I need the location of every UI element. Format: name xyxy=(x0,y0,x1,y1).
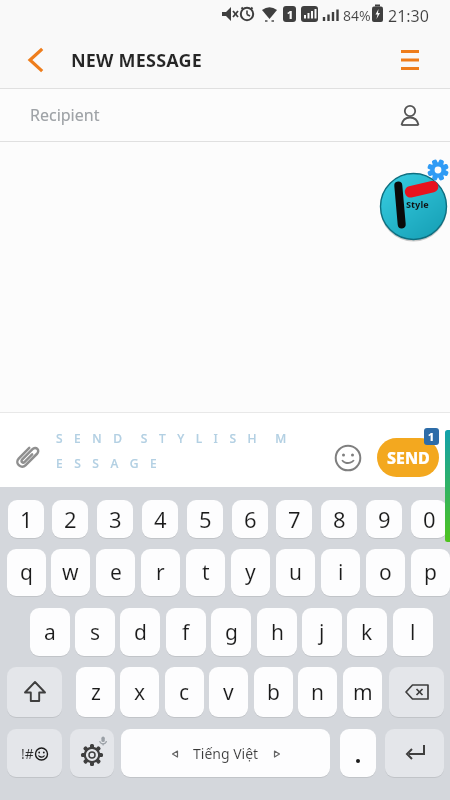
staticText: l xyxy=(410,618,416,647)
button[interactable] xyxy=(333,443,363,473)
button[interactable]: e xyxy=(96,549,135,596)
staticText: 1 xyxy=(428,429,435,444)
button[interactable]: x xyxy=(120,667,159,717)
button[interactable]: a xyxy=(30,608,70,656)
staticText: o xyxy=(379,558,392,587)
button[interactable]: 3 xyxy=(97,500,133,538)
button[interactable] xyxy=(18,44,52,76)
button[interactable]: 1 xyxy=(8,500,44,538)
staticText: S E N D S T Y L I S H M xyxy=(56,430,291,446)
staticText: a xyxy=(44,618,56,647)
button[interactable] xyxy=(9,439,45,475)
staticText: s xyxy=(90,618,101,647)
staticText: y xyxy=(245,558,256,587)
button[interactable] xyxy=(394,44,428,76)
staticText: SEND xyxy=(387,447,430,469)
staticText: 84% xyxy=(343,6,371,25)
button[interactable]: 7 xyxy=(276,500,312,538)
button[interactable]: m xyxy=(343,667,382,717)
button[interactable]: k xyxy=(347,608,387,656)
button[interactable]: w xyxy=(51,549,90,596)
staticText: k xyxy=(361,618,373,647)
staticText: Tiếng Việt xyxy=(193,744,259,763)
button[interactable] xyxy=(396,102,424,130)
staticText: w xyxy=(62,558,79,587)
staticText: 1 xyxy=(287,7,294,22)
button[interactable]: Style xyxy=(380,173,447,240)
staticText: q xyxy=(20,558,33,587)
staticText: 0 xyxy=(423,504,436,534)
staticText: c xyxy=(179,678,190,707)
button[interactable] xyxy=(70,729,114,777)
staticText: 2 xyxy=(64,504,77,534)
button[interactable]: 2 xyxy=(52,500,88,538)
button[interactable]: z xyxy=(76,667,115,717)
staticText: n xyxy=(311,678,324,707)
staticText: 9 xyxy=(378,504,391,534)
staticText: 4 xyxy=(154,504,167,534)
staticText: NEW MESSAGE xyxy=(71,48,203,73)
button[interactable]: 4 xyxy=(142,500,178,538)
button[interactable]: f xyxy=(166,608,206,656)
button[interactable]: u xyxy=(276,549,315,596)
staticText: v xyxy=(223,678,234,707)
staticText: h xyxy=(271,618,284,647)
button[interactable]: !# xyxy=(7,729,62,777)
button[interactable] xyxy=(0,89,450,141)
staticText: m xyxy=(353,678,373,707)
staticText: d xyxy=(134,618,147,647)
button[interactable]: y xyxy=(231,549,270,596)
staticText: 3 xyxy=(109,504,122,534)
button[interactable]: 6 xyxy=(232,500,268,538)
button[interactable]: q xyxy=(7,549,46,596)
button[interactable]: v xyxy=(209,667,248,717)
staticText: u xyxy=(289,558,302,587)
button[interactable] xyxy=(7,667,62,717)
staticText: 1 xyxy=(20,504,33,534)
staticText: Recipient xyxy=(30,104,100,126)
staticText: 7 xyxy=(288,504,301,534)
button[interactable] xyxy=(389,667,444,717)
button[interactable] xyxy=(385,729,444,777)
staticText: E S S A G E xyxy=(56,455,161,471)
button[interactable]: i xyxy=(321,549,360,596)
button[interactable]: r xyxy=(141,549,180,596)
button[interactable]: c xyxy=(165,667,204,717)
staticText: Style xyxy=(406,198,429,210)
staticText: f xyxy=(182,618,190,647)
staticText: g xyxy=(225,618,238,647)
button[interactable]: Tiếng Việt xyxy=(121,729,330,777)
button[interactable]: SEND xyxy=(377,438,439,477)
staticText: 5 xyxy=(199,504,212,534)
staticText: r xyxy=(156,558,165,587)
staticText: 8 xyxy=(333,504,346,534)
button[interactable]: 8 xyxy=(321,500,357,538)
button[interactable]: t xyxy=(186,549,225,596)
button[interactable]: g xyxy=(211,608,251,656)
staticText: 21:30 xyxy=(388,5,429,27)
button[interactable] xyxy=(340,729,376,777)
staticText: !# xyxy=(21,744,34,763)
staticText: x xyxy=(134,678,146,707)
staticText: t xyxy=(202,558,210,587)
button[interactable]: j xyxy=(302,608,342,656)
button[interactable]: n xyxy=(298,667,337,717)
button[interactable]: 5 xyxy=(187,500,223,538)
button[interactable]: o xyxy=(366,549,405,596)
button[interactable]: 9 xyxy=(366,500,402,538)
staticText: p xyxy=(424,558,437,587)
staticText: 6 xyxy=(244,504,257,534)
button[interactable]: s xyxy=(75,608,115,656)
button[interactable]: b xyxy=(254,667,293,717)
staticText: z xyxy=(91,678,101,707)
button[interactable]: h xyxy=(257,608,297,656)
staticText: b xyxy=(267,678,280,707)
staticText: j xyxy=(319,618,325,647)
button[interactable]: d xyxy=(120,608,160,656)
button[interactable]: p xyxy=(411,549,450,596)
staticText: i xyxy=(338,558,344,587)
button[interactable]: 0 xyxy=(411,500,447,538)
button[interactable]: l xyxy=(393,608,433,656)
staticText: e xyxy=(110,558,122,587)
